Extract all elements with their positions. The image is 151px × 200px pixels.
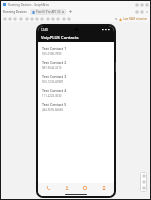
button[interactable]: Panel option <box>139 9 144 14</box>
button[interactable]: Emulator control <box>7 16 12 22</box>
button[interactable]: Test Contact 5 <box>38 100 114 114</box>
staticText: 12:30 <box>41 28 48 32</box>
staticText: Running Devices - GraphBros <box>8 3 50 7</box>
button[interactable]: Window control <box>139 2 144 7</box>
staticText: Test Contact 1 <box>42 46 67 51</box>
button[interactable]: Low RAM situation <box>119 17 148 21</box>
button[interactable]: Dialer <box>39 183 57 192</box>
button[interactable]: Hide panel <box>144 9 149 14</box>
button[interactable]: Emulator control <box>18 16 23 22</box>
button[interactable]: Test Contact 4 <box>38 86 114 100</box>
button[interactable]: Emulator control <box>66 16 71 22</box>
button[interactable]: Window control <box>134 2 139 7</box>
button[interactable]: Test Contact 1 <box>38 44 114 58</box>
button[interactable]: Emulator control <box>39 16 44 22</box>
staticText: 987-6544-3210 <box>42 66 62 70</box>
button[interactable]: Add device <box>68 9 73 14</box>
button[interactable]: Emulator control <box>2 16 7 22</box>
button[interactable]: Window control <box>144 2 149 7</box>
button[interactable]: Emulator control <box>61 16 66 22</box>
staticText: 555-1233-#0987 <box>42 80 64 84</box>
staticText: Low RAM situation <box>123 17 148 21</box>
staticText: VoipPLUS Contacts <box>41 35 79 41</box>
button[interactable]: Rotate <box>141 185 147 191</box>
button[interactable]: Emulator control <box>45 16 50 22</box>
staticText: Test Contact 3 <box>42 74 67 79</box>
button[interactable]: Test Contact 2 <box>38 58 114 72</box>
button[interactable]: Contacts <box>58 183 76 192</box>
button[interactable]: Account <box>95 183 113 192</box>
button[interactable]: Emulator control <box>34 16 39 22</box>
button[interactable]: Pixel 6 Pro API 33 <box>30 9 66 15</box>
button[interactable]: Search <box>113 16 118 21</box>
button[interactable]: Emulator control <box>55 16 60 22</box>
staticText: Test Contact 2 <box>42 60 67 65</box>
button[interactable]: Test Contact 3 <box>38 72 114 86</box>
button[interactable]: Emulator control <box>12 16 17 22</box>
button[interactable]: Panel option <box>134 9 139 14</box>
button[interactable]: Emulator control <box>24 16 29 22</box>
button[interactable]: Emulator control <box>50 16 55 22</box>
staticText: 444-5555-66666 <box>42 108 63 112</box>
staticText: 111-2223-3030 <box>42 94 62 98</box>
staticText: Pixel 6 Pro API 33 <box>36 10 61 14</box>
staticText: Test Contact 5 <box>42 102 67 107</box>
button[interactable]: Emulator control <box>29 16 34 22</box>
staticText: Test Contact 4 <box>42 88 67 93</box>
button[interactable]: Volume <box>141 179 147 185</box>
staticText: 555-0186-7890 <box>42 52 62 56</box>
button[interactable]: Settings <box>76 183 94 192</box>
button[interactable]: Power <box>141 173 147 179</box>
staticText: Running Devices <box>3 10 27 14</box>
